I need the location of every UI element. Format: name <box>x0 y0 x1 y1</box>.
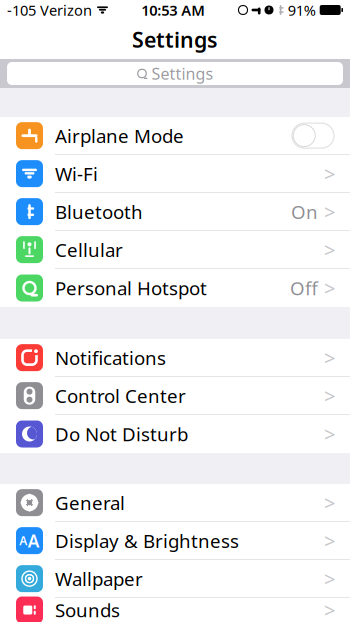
staticText: > <box>324 275 335 301</box>
staticText: Sounds <box>55 598 120 622</box>
staticText: > <box>324 198 335 225</box>
staticText: On <box>291 199 318 224</box>
button[interactable]: Notifications <box>0 339 350 377</box>
staticText: > <box>324 565 335 592</box>
staticText: Settings <box>151 63 213 84</box>
button[interactable]: General <box>0 484 350 522</box>
staticText: Settings <box>132 25 218 54</box>
button[interactable]: Bluetooth <box>0 193 350 231</box>
button[interactable]: Wi-Fi <box>0 155 350 193</box>
staticText: > <box>324 344 335 371</box>
staticText: Off <box>290 276 318 300</box>
button[interactable]: Sounds <box>0 598 350 622</box>
button[interactable]: Control Center <box>0 377 350 415</box>
staticText: -105 Verizon <box>7 0 92 20</box>
staticText: Bluetooth <box>55 199 143 224</box>
staticText: > <box>324 382 335 409</box>
button[interactable]: Search Settings <box>0 59 350 88</box>
button[interactable]: Wallpaper <box>0 560 350 598</box>
staticText: > <box>324 489 335 516</box>
button[interactable]: Personal Hotspot <box>0 269 350 307</box>
staticText: > <box>324 527 335 554</box>
staticText: Personal Hotspot <box>55 276 207 300</box>
staticText: > <box>324 597 335 622</box>
staticText: Cellular <box>55 237 123 262</box>
staticText: > <box>324 236 335 263</box>
staticText: General <box>55 490 125 515</box>
staticText: A <box>28 529 40 552</box>
button[interactable]: Do Not Disturb <box>0 415 350 453</box>
staticText: Wallpaper <box>55 566 143 591</box>
staticText: 10:53 AM <box>141 0 205 20</box>
staticText: > <box>324 160 335 187</box>
staticText: Do Not Disturb <box>55 422 188 446</box>
button[interactable]: Airplane Mode <box>0 117 350 155</box>
button[interactable]: Cellular <box>0 231 350 269</box>
staticText: > <box>324 421 335 447</box>
staticText: Display & Brightness <box>55 528 239 553</box>
staticText: Wi-Fi <box>55 161 98 186</box>
staticText: 91% <box>288 0 316 20</box>
staticText: Control Center <box>55 383 186 408</box>
button[interactable]: A <box>0 522 350 560</box>
staticText: Airplane Mode <box>55 123 184 148</box>
staticText: Notifications <box>55 345 166 370</box>
staticText: A <box>19 533 27 549</box>
